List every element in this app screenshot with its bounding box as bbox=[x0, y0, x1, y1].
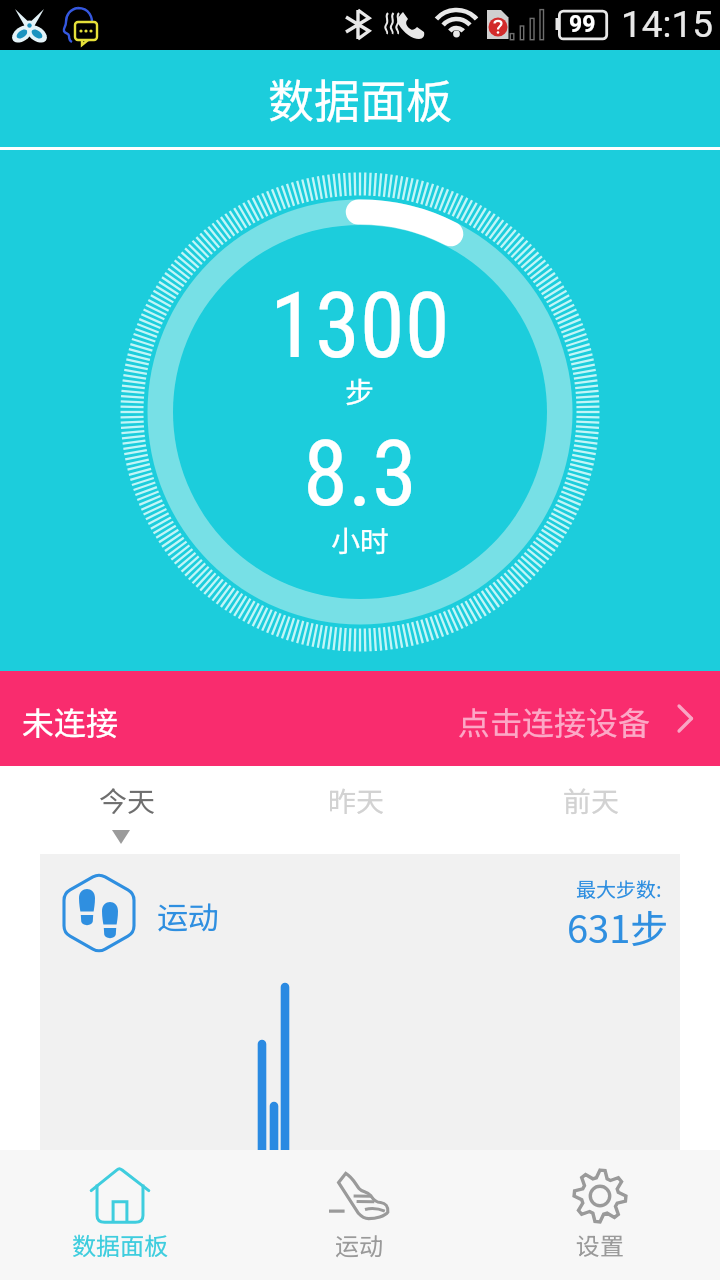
staticText: 14:15 bbox=[621, 3, 714, 46]
staticText: 设置 bbox=[576, 1227, 624, 1262]
other: 连接设备 bbox=[674, 701, 700, 735]
button[interactable]: 运动 bbox=[40, 854, 680, 1150]
staticText: 数据面板 bbox=[268, 65, 452, 132]
staticText: 8.3 bbox=[303, 421, 417, 528]
button[interactable]: 今天 bbox=[67, 766, 187, 854]
staticText: 631步 bbox=[567, 899, 669, 954]
button[interactable]: 前天 bbox=[531, 766, 651, 854]
button[interactable]: 设置 bbox=[520, 1150, 680, 1280]
button[interactable]: 运动 bbox=[279, 1150, 439, 1280]
staticText: 99 bbox=[569, 11, 596, 38]
button[interactable]: 数据面板 bbox=[40, 1150, 200, 1280]
button[interactable]: 昨天 bbox=[296, 766, 416, 854]
staticText: 数据面板 bbox=[72, 1227, 168, 1262]
staticText: 今天 bbox=[99, 780, 156, 821]
other: 设置 bbox=[570, 1169, 630, 1223]
staticText: 未连接 bbox=[22, 698, 119, 744]
staticText: 前天 bbox=[563, 780, 620, 821]
button[interactable]: 未连接 bbox=[0, 671, 720, 766]
staticText: 步 bbox=[345, 369, 375, 411]
staticText: 点击连接设备 bbox=[458, 698, 651, 744]
staticText: 运动 bbox=[335, 1227, 383, 1262]
staticText: 小时 bbox=[331, 518, 390, 560]
staticText: 昨天 bbox=[328, 780, 385, 821]
staticText: 运动 bbox=[157, 893, 219, 938]
other: 数据面板 bbox=[90, 1169, 150, 1223]
staticText: 最大步数: bbox=[576, 874, 662, 903]
staticText: 1300 bbox=[270, 273, 450, 380]
other: 运动 bbox=[329, 1169, 389, 1223]
